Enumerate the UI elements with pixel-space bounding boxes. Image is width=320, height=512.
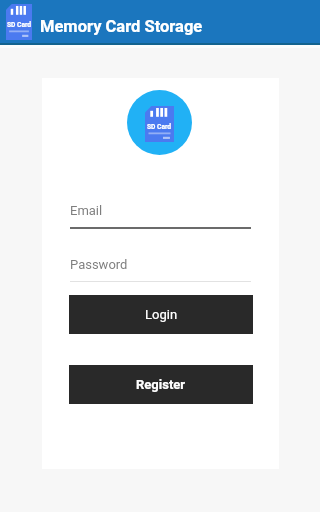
staticText: SD Card (7, 21, 32, 29)
staticText: Register (136, 377, 186, 392)
button[interactable]: Register (69, 365, 253, 404)
staticText: Email (70, 203, 103, 218)
staticText: Password (70, 257, 128, 272)
staticText: Login (145, 307, 178, 322)
button[interactable]: Login (69, 295, 253, 334)
staticText: Memory Card Storage (40, 17, 203, 36)
staticText: SD Card (147, 123, 172, 131)
